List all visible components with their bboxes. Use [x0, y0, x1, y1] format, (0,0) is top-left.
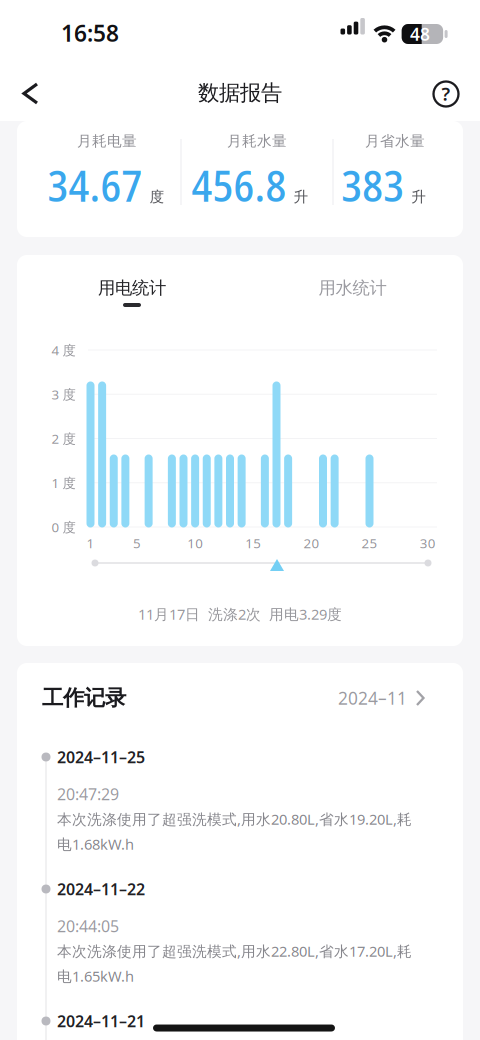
staticText: 2024–11 [338, 686, 407, 709]
button[interactable]: 用电统计 [62, 268, 202, 314]
button[interactable]: Back [8, 77, 52, 110]
staticText: 20 [303, 534, 319, 552]
staticText: 20:44:05 [57, 915, 119, 937]
staticText: 2024–11–21 [57, 1010, 145, 1032]
staticText: 25 [361, 534, 377, 552]
staticText: 2024–11–25 [57, 746, 145, 768]
staticText: 本次洗涤使用了超强洗模式,用水22.80L,省水17.20L,耗 [57, 941, 412, 961]
staticText: 月省水量 [365, 132, 425, 150]
staticText: 4 度 [51, 341, 75, 359]
staticText: 11月17日 洗涤2次 用电3.29度 [138, 604, 342, 624]
staticText: 30 [420, 534, 436, 552]
staticText: 月耗水量 [227, 132, 287, 150]
staticText: 本次洗涤使用了超强洗模式,用水20.80L,省水19.20L,耗 [57, 809, 412, 829]
button[interactable]: 选择月份 2024-11 [275, 681, 425, 715]
staticText: 2024–11–22 [57, 878, 145, 900]
staticText: 电1.68kW.h [57, 834, 134, 854]
staticText: 升 [293, 188, 308, 206]
staticText: 16:58 [61, 18, 119, 48]
staticText: 5 [133, 534, 141, 552]
staticText: 用水统计 [318, 277, 386, 299]
staticText: 工作记录 [42, 685, 126, 711]
staticText: 月耗电量 [77, 132, 137, 150]
staticText: 3 度 [51, 385, 75, 403]
staticText: 456.8 [191, 155, 286, 214]
staticText: ? [441, 81, 450, 106]
button[interactable]: 用水统计 [282, 268, 422, 314]
button[interactable]: Help [429, 77, 463, 111]
staticText: 383 [341, 155, 404, 214]
staticText: 2 度 [51, 430, 75, 447]
staticText: 0 度 [51, 518, 75, 536]
staticText: 48 [410, 22, 430, 45]
staticText: 用电统计 [98, 277, 166, 299]
staticText: 15 [245, 534, 261, 552]
staticText: 电1.65kW.h [57, 966, 134, 986]
staticText: 数据报告 [198, 80, 282, 106]
staticText: 1 度 [51, 474, 75, 492]
staticText: 20:47:29 [57, 783, 119, 805]
staticText: 1 [86, 534, 94, 552]
staticText: 升 [411, 188, 426, 206]
staticText: 10 [187, 534, 203, 552]
staticText: 度 [149, 188, 164, 206]
staticText: 34.67 [47, 155, 142, 214]
